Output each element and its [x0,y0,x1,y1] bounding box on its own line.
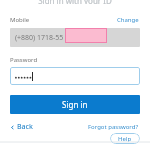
button[interactable]: (+880) 1718-55 [10,28,140,47]
button[interactable]: Forgot password? [87,122,140,132]
button[interactable]: Change [116,15,140,25]
staticText: Sign in [62,99,88,110]
staticText: (+880) 1718-55 [15,33,64,43]
button[interactable]: Help [110,133,140,144]
staticText: Forgot password? [88,123,139,131]
staticText: Mobile [10,16,30,24]
staticText: Change [117,16,139,24]
staticText: Sign in with your ID [38,0,112,4]
button[interactable]: Sign in [10,95,140,114]
button[interactable] [10,67,140,85]
staticText: Back [17,122,33,132]
staticText: Password [10,56,38,64]
button[interactable]: Back [8,121,35,133]
staticText: Help [118,135,132,143]
